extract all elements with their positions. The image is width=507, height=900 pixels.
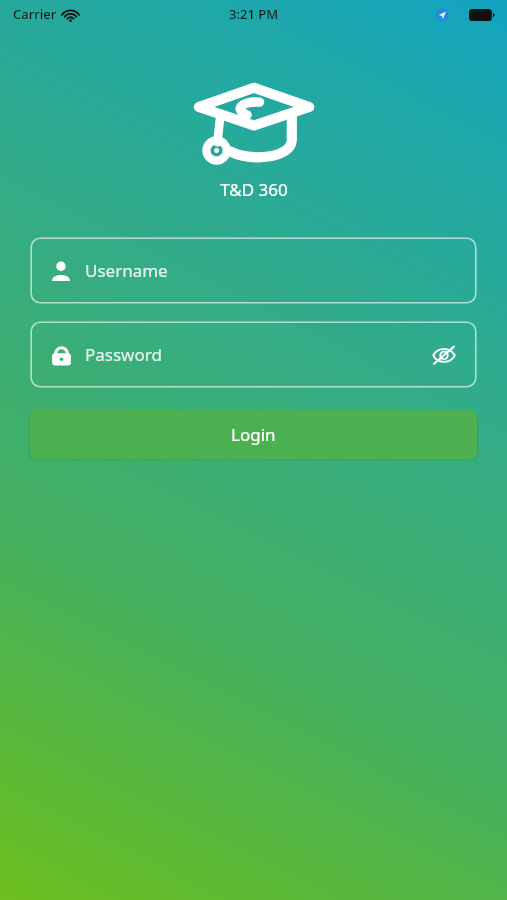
button[interactable]: Username <box>30 237 477 304</box>
button[interactable]: Login <box>30 410 477 459</box>
button[interactable]: Password <box>30 321 477 388</box>
staticText: Login <box>231 423 276 446</box>
staticText: Carrier <box>13 5 57 23</box>
staticText: Password <box>85 343 162 366</box>
staticText: T&D 360 <box>220 178 288 201</box>
staticText: 3:21 PM <box>229 5 279 23</box>
button[interactable]: Show password <box>427 338 461 372</box>
staticText: Username <box>85 259 168 282</box>
